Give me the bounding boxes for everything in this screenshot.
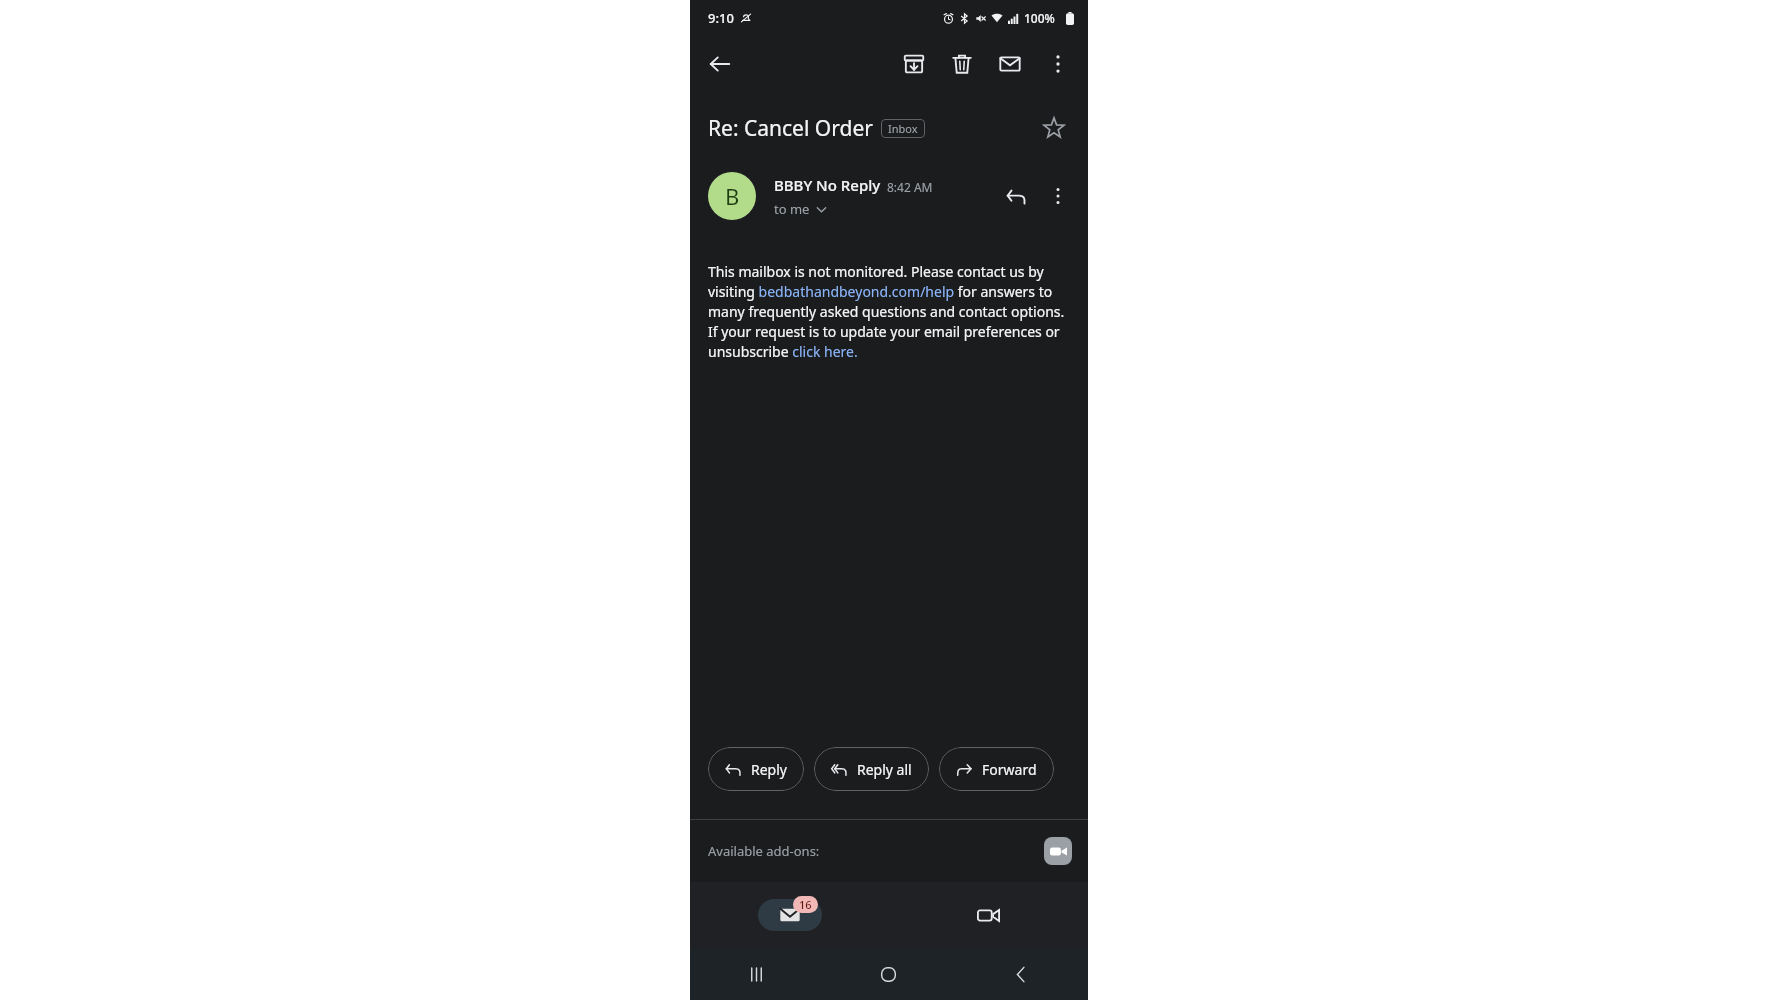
staticText: 100% (1024, 10, 1055, 26)
staticText: 8:42 AM (887, 179, 933, 195)
staticText: This mailbox is not monitored. Please co… (708, 262, 1070, 361)
button[interactable]: Reply (994, 174, 1038, 218)
button[interactable]: Mail, 16 unread (758, 899, 822, 931)
button[interactable]: Back (955, 948, 1088, 1000)
button[interactable]: Reply all (814, 747, 929, 791)
button[interactable]: Delete (938, 40, 986, 88)
button[interactable]: Archive (890, 40, 938, 88)
staticText: B (725, 181, 740, 211)
button[interactable]: Sender avatar (708, 172, 756, 220)
staticText: Forward (982, 760, 1037, 779)
staticText: Re: Cancel Order (708, 114, 873, 143)
button[interactable]: Reply (708, 747, 804, 791)
button[interactable]: Back (698, 42, 742, 86)
button[interactable]: Recents (690, 948, 822, 1000)
button[interactable]: Inbox (881, 119, 925, 138)
staticText: 9:10 (708, 9, 734, 27)
staticText: Reply all (857, 760, 912, 779)
button[interactable]: Mark unread (986, 40, 1034, 88)
button[interactable]: Zoom add-on (1044, 837, 1072, 865)
staticText: Reply (751, 760, 787, 779)
staticText: BBBY No Reply (774, 175, 881, 195)
button[interactable]: Meet (889, 882, 1088, 948)
button[interactable]: More options (1034, 40, 1082, 88)
button[interactable]: Star (1032, 106, 1076, 150)
staticText: 16 (799, 897, 812, 912)
button[interactable]: Home (822, 948, 955, 1000)
staticText: Available add-ons: (708, 842, 820, 860)
button[interactable]: to me (774, 200, 827, 218)
button[interactable]: Forward (939, 747, 1054, 791)
button[interactable]: More options (1038, 176, 1078, 216)
staticText: Inbox (888, 121, 918, 136)
staticText: to me (774, 200, 810, 218)
